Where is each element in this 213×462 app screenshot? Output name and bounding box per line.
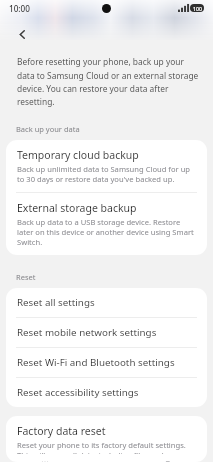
button[interactable]: Reset Wi-Fi and Bluetooth settings xyxy=(6,348,207,377)
staticText: Reset accessibility settings xyxy=(17,386,139,399)
button[interactable]: Reset accessibility settings xyxy=(6,378,207,407)
staticText: Temporary cloud backup xyxy=(17,148,139,162)
button[interactable]: Back xyxy=(6,18,38,50)
staticText: Factory data reset xyxy=(17,424,106,438)
staticText: Reset Wi-Fi and Bluetooth settings xyxy=(17,356,175,369)
button[interactable]: Factory data reset xyxy=(6,416,207,462)
staticText: Back up your data xyxy=(16,124,80,134)
staticText: Reset your phone to its factory default … xyxy=(17,440,195,454)
staticText: 10:00 xyxy=(9,3,30,14)
button[interactable]: Temporary cloud backup xyxy=(6,140,207,192)
button[interactable]: Reset mobile network settings xyxy=(6,318,207,347)
staticText: Reset xyxy=(16,272,36,282)
staticText: Reset mobile network settings xyxy=(17,326,157,339)
staticText: External storage backup xyxy=(17,201,137,215)
staticText: Before resetting your phone, back up you… xyxy=(17,56,199,107)
button[interactable]: Reset all settings xyxy=(6,288,207,317)
button[interactable]: External storage backup xyxy=(6,193,207,255)
staticText: Back up unlimited data to Samsung Cloud … xyxy=(17,164,195,184)
staticText: Reset all settings xyxy=(17,296,95,309)
staticText: 100 xyxy=(193,5,202,12)
staticText: Back up data to a USB storage device. Re… xyxy=(17,217,195,247)
